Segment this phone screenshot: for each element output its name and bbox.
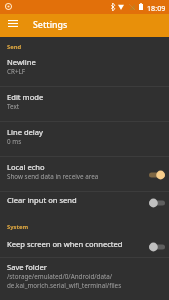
staticText: Keep screen on when connected [7, 239, 123, 249]
staticText: Newline [7, 57, 36, 67]
staticText: CR+LF [7, 67, 26, 76]
staticText: System [7, 223, 29, 231]
staticText: Edit mode [7, 92, 44, 102]
button[interactable]: Local echo [0, 157, 169, 192]
button[interactable]: Edit mode [0, 87, 169, 122]
staticText: /storage/emulated/0/Android/data/ de.kai… [7, 272, 122, 290]
button[interactable]: Keep screen on when connected [0, 236, 169, 258]
staticText: Local echo [7, 162, 45, 172]
staticText: Send [7, 43, 22, 51]
button[interactable]: Line delay [0, 122, 169, 157]
staticText: Save folder [7, 262, 47, 272]
button[interactable]: Open navigation drawer [0, 14, 22, 37]
staticText: Clear input on send [7, 195, 77, 205]
staticText: 18:09 [147, 3, 166, 13]
staticText: Show send data in receive area [7, 172, 99, 181]
staticText: Text [7, 102, 20, 111]
button[interactable]: Save folder [0, 258, 169, 300]
button[interactable]: Newline [0, 52, 169, 87]
staticText: Line delay [7, 127, 43, 137]
staticText: 0 ms [7, 137, 22, 146]
button[interactable]: Clear input on send [0, 192, 169, 214]
staticText: Settings [33, 19, 68, 31]
